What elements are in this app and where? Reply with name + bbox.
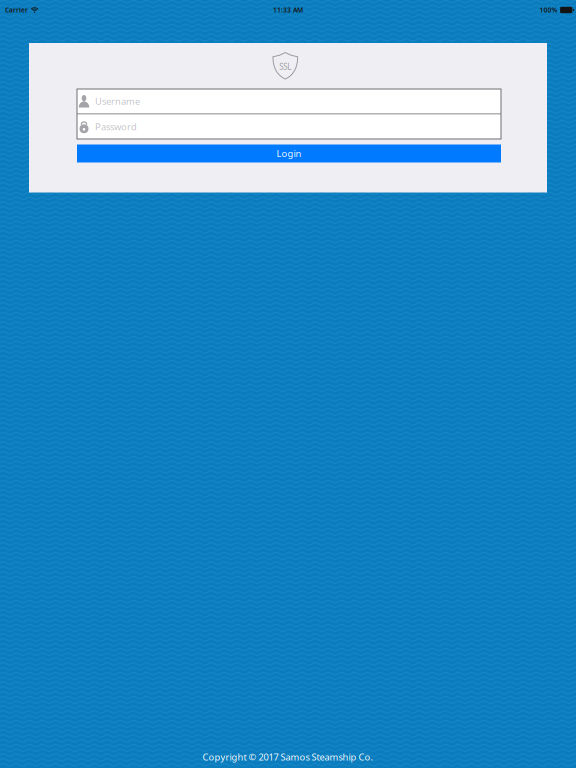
staticText: SSL bbox=[279, 61, 291, 72]
staticText: Username bbox=[95, 95, 140, 107]
staticText: Copyright © 2017 Samos Steamship Co. bbox=[202, 751, 373, 763]
button[interactable]: Username bbox=[77, 89, 501, 113]
staticText: 11:33 AM bbox=[273, 6, 303, 14]
staticText: Carrier bbox=[5, 6, 28, 14]
staticText: Password bbox=[95, 121, 137, 133]
button[interactable]: Login bbox=[77, 144, 501, 162]
staticText: 100% bbox=[540, 6, 558, 14]
button[interactable]: Password bbox=[77, 114, 501, 139]
staticText: Login bbox=[276, 147, 301, 160]
